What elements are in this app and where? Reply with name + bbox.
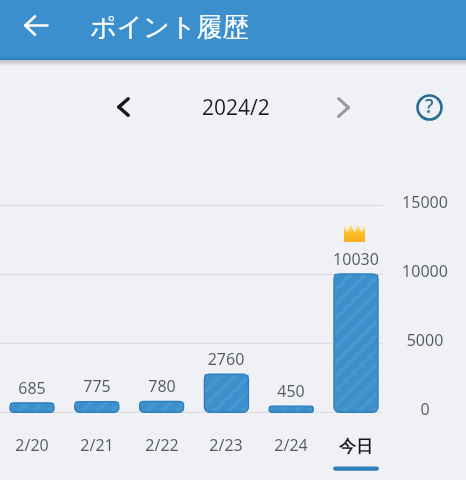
- staticText: 15000: [394, 191, 456, 213]
- button[interactable]: Previous month: [99, 83, 147, 131]
- staticText: 2/24: [251, 434, 331, 456]
- staticText: 780: [122, 375, 202, 397]
- staticText: 10030: [316, 248, 396, 270]
- staticText: 450: [251, 380, 331, 402]
- staticText: 685: [0, 377, 72, 399]
- staticText: 10000: [394, 260, 456, 282]
- staticText: 今日: [316, 436, 396, 457]
- staticText: 5000: [394, 329, 456, 351]
- staticText: 2/22: [122, 434, 202, 456]
- button[interactable]: Back: [12, 2, 59, 49]
- staticText: 775: [57, 375, 137, 397]
- button[interactable]: Help: [405, 83, 453, 131]
- staticText: 2/21: [57, 434, 137, 456]
- staticText: 0: [394, 398, 456, 420]
- staticText: 2/23: [186, 434, 266, 456]
- staticText: 2024/2: [202, 93, 270, 122]
- staticText: 2760: [186, 348, 266, 370]
- staticText: ?: [425, 93, 434, 119]
- staticText: ポイント履歴: [90, 11, 249, 44]
- button[interactable]: Next month: [319, 83, 367, 131]
- staticText: 2/20: [0, 434, 72, 456]
